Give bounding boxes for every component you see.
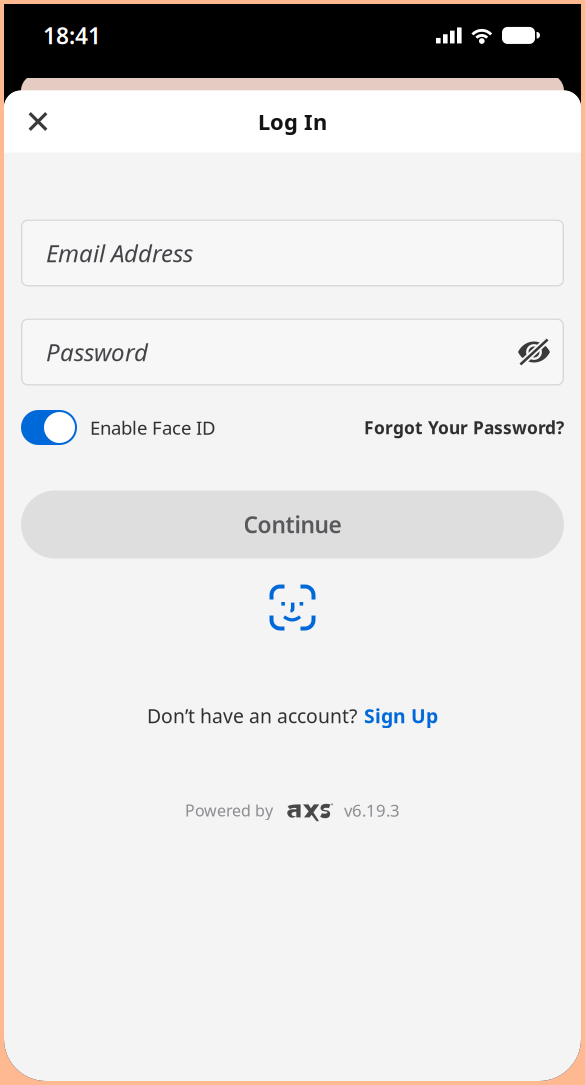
button[interactable]: Continue [21, 490, 564, 558]
button[interactable]: Close [15, 98, 61, 144]
staticText: Email Address [46, 237, 193, 269]
button[interactable]: Enable Face ID [21, 410, 216, 445]
button[interactable]: Sign in with Face ID [269, 584, 315, 630]
staticText: 18:41 [43, 20, 101, 51]
button[interactable]: Forgot Your Password? [364, 416, 564, 439]
staticText: Forgot Your Password? [364, 416, 564, 439]
staticText: Don’t have an account? [147, 702, 357, 729]
staticText: Log In [258, 107, 327, 136]
button[interactable]: Show password [517, 337, 551, 366]
staticText: Powered by [185, 799, 273, 821]
staticText: Password [46, 336, 148, 368]
staticText: Continue [243, 509, 341, 540]
staticText: Enable Face ID [90, 415, 216, 440]
button[interactable]: Sign Up [364, 702, 438, 729]
staticText: Sign Up [364, 702, 438, 729]
staticText: v6.19.3 [344, 799, 400, 821]
